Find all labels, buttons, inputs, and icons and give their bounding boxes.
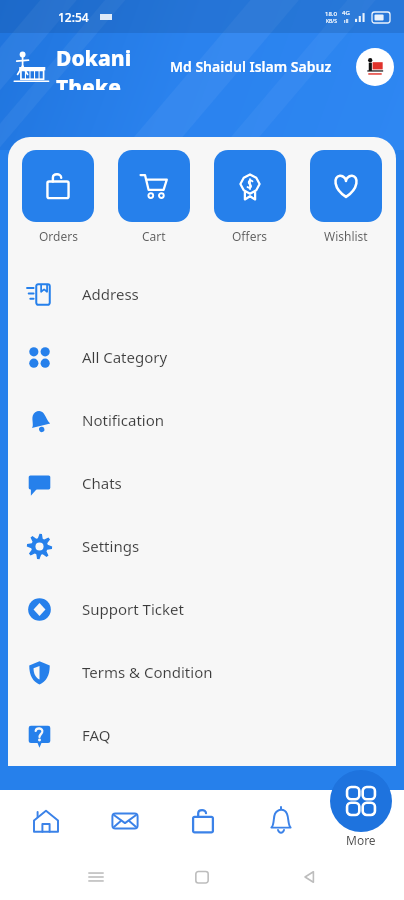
staticText: More <box>346 832 376 848</box>
staticText: Settings <box>82 536 140 556</box>
staticText: 18.0 <box>325 10 337 18</box>
button[interactable]: FAQ <box>8 703 396 766</box>
button[interactable]: Dokani Theke logo <box>10 44 160 90</box>
button[interactable]: Shop <box>164 790 242 852</box>
staticText: All Category <box>82 347 168 367</box>
button[interactable]: Support Ticket <box>8 577 396 640</box>
button[interactable]: Home <box>6 790 85 852</box>
staticText: KB/S <box>326 18 337 25</box>
staticText: Wishlist <box>324 228 368 244</box>
staticText: ıll <box>344 17 349 25</box>
button[interactable]: Notifications <box>242 790 320 852</box>
staticText: Notification <box>82 410 165 430</box>
other: Recents <box>85 866 107 888</box>
button[interactable]: Notification <box>8 388 396 451</box>
button[interactable]: Offers <box>214 150 286 244</box>
staticText: Cart <box>142 228 166 244</box>
staticText: Offers <box>232 228 268 244</box>
other: Dokani Theke logo <box>10 50 52 84</box>
button[interactable]: Messages <box>85 790 164 852</box>
staticText: Dokani Theke <box>56 44 160 90</box>
staticText: 12:54 <box>58 9 89 25</box>
button[interactable]: All Category <box>8 325 396 388</box>
other: Home <box>191 866 213 888</box>
button[interactable]: Address <box>8 262 396 325</box>
staticText: 4G <box>342 9 350 17</box>
staticText: FAQ <box>82 725 111 745</box>
other: Back <box>298 866 320 888</box>
button[interactable]: Settings <box>8 514 396 577</box>
staticText: Chats <box>82 473 122 493</box>
staticText: Address <box>82 284 139 304</box>
button[interactable]: More <box>330 770 392 832</box>
button[interactable]: Profile <box>356 48 394 86</box>
button[interactable]: Terms & Condition <box>8 640 396 703</box>
staticText: Md Shaidul Islam Sabuz <box>170 57 356 76</box>
button[interactable]: Orders <box>22 150 94 244</box>
button[interactable]: Chats <box>8 451 396 514</box>
staticText: Orders <box>39 228 78 244</box>
button[interactable]: Cart <box>118 150 190 244</box>
staticText: Support Ticket <box>82 599 184 619</box>
button[interactable]: Wishlist <box>310 150 382 244</box>
staticText: Terms & Condition <box>82 662 213 682</box>
